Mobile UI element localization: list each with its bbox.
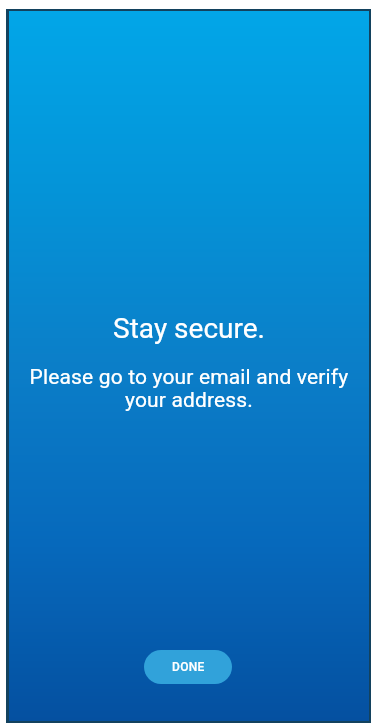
staticText: Stay secure. [9,312,369,345]
staticText: DONE [172,660,205,674]
button[interactable]: Done [144,650,232,684]
staticText: Please go to your email and verify your … [19,365,359,413]
